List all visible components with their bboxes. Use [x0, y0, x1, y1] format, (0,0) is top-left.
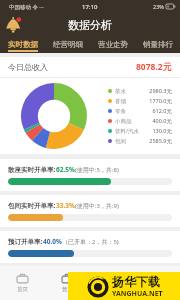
staticText: 营业走势: [98, 40, 128, 49]
button[interactable]: Notifications: [4, 15, 24, 35]
staticText: 130.0元: [141, 127, 172, 135]
staticText: 销量排行: [143, 40, 173, 49]
staticText: （已开单：2，共：5): [62, 238, 119, 246]
staticText: 今日总收入: [8, 62, 48, 72]
button[interactable]: 营业: [45, 266, 90, 300]
staticText: YANGHUA.NET: [112, 289, 163, 299]
staticText: 我的: [152, 286, 163, 293]
staticText: 17:10: [82, 3, 98, 11]
staticText: 23%: [153, 3, 164, 10]
button[interactable]: 包间实时开单率:: [0, 195, 180, 227]
button[interactable]: 散座实时开单率:: [0, 159, 180, 191]
staticText: 营业: [62, 286, 73, 293]
staticText: (使用中:3，共:9): [75, 202, 119, 210]
staticText: 香烟: [115, 98, 141, 105]
staticText: 1770.0元: [141, 97, 172, 105]
staticText: 零食: [115, 108, 141, 115]
staticText: 中国移动 令 ···: [9, 3, 44, 11]
staticText: 包间实时开单率:: [8, 201, 56, 210]
staticText: 8078.2元: [136, 61, 172, 73]
button[interactable]: 预订开单率:: [0, 231, 180, 263]
staticText: 数据分析: [68, 18, 112, 32]
button[interactable]: 销量排行: [135, 36, 180, 53]
staticText: 首页: [17, 286, 28, 293]
staticText: 茶水: [115, 88, 141, 95]
button[interactable]: 首页: [0, 266, 45, 300]
staticText: 实时数据: [8, 40, 38, 49]
staticText: 400.0元: [141, 117, 172, 125]
staticText: 包间: [115, 138, 141, 145]
button[interactable]: 营业走势: [90, 36, 135, 53]
staticText: 62.5%: [56, 165, 75, 174]
button[interactable]: 经营明细: [45, 36, 90, 53]
staticText: 612.0元: [141, 107, 172, 115]
button[interactable]: 实时数据: [0, 36, 45, 53]
staticText: 33.3%: [56, 201, 75, 210]
staticText: 小商品: [115, 118, 141, 125]
staticText: (使用中:5，共:8): [75, 166, 119, 174]
staticText: 预订开单率:: [8, 237, 43, 246]
staticText: 经营明细: [53, 40, 83, 49]
staticText: 2980.3元: [141, 87, 172, 95]
staticText: 饮料/汽水: [115, 127, 141, 135]
staticText: 扬华下载: [112, 274, 160, 289]
staticText: 2585.9元: [141, 137, 172, 145]
staticText: 统计: [107, 286, 118, 293]
staticText: 散座实时开单率:: [8, 165, 56, 174]
staticText: 40.0%: [43, 237, 62, 246]
button[interactable]: 统计: [90, 266, 135, 300]
button[interactable]: 我的: [135, 266, 180, 300]
